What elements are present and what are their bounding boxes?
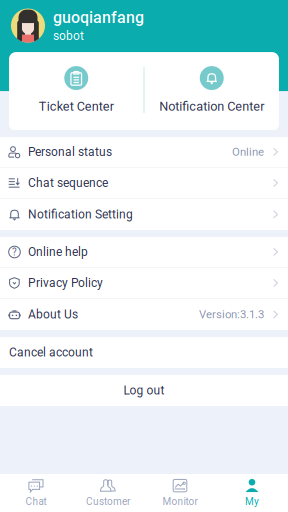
staticText: Notification Setting — [28, 207, 133, 222]
staticText: Chat — [25, 496, 46, 507]
staticText: Notification Center — [159, 99, 264, 114]
staticText: My — [245, 496, 259, 507]
staticText: Chat sequence — [28, 176, 108, 190]
staticText: Ticket Center — [39, 99, 114, 114]
staticText: Log out — [123, 383, 164, 398]
staticText: Cancel account — [9, 345, 93, 360]
button[interactable]: ? — [0, 237, 288, 268]
staticText: Version:3.1.3 — [199, 308, 264, 321]
button[interactable]: Customer — [72, 473, 144, 512]
button[interactable]: Personal status — [0, 137, 288, 168]
button[interactable]: Ticket Center — [9, 66, 143, 114]
staticText: Personal status — [28, 145, 112, 159]
staticText: Monitor — [162, 496, 197, 507]
staticText: About Us — [28, 307, 78, 322]
button[interactable]: Chat — [0, 473, 72, 512]
staticText: Privacy Policy — [28, 276, 103, 290]
staticText: Online help — [28, 245, 88, 259]
button[interactable]: Notification Setting — [0, 199, 288, 230]
button[interactable]: My — [216, 473, 288, 512]
button[interactable]: About Us — [0, 299, 288, 330]
staticText: Customer — [86, 496, 130, 507]
button[interactable]: Chat sequence — [0, 168, 288, 199]
button[interactable]: Privacy Policy — [0, 268, 288, 299]
button[interactable]: Notification Center — [144, 66, 279, 114]
staticText: Online — [232, 145, 264, 159]
staticText: ? — [12, 246, 17, 258]
staticText: guoqianfang — [53, 8, 144, 27]
button[interactable]: Log out — [0, 375, 288, 406]
staticText: sobot — [53, 29, 84, 43]
button[interactable]: Monitor — [144, 473, 216, 512]
button[interactable]: Cancel account — [0, 337, 288, 368]
